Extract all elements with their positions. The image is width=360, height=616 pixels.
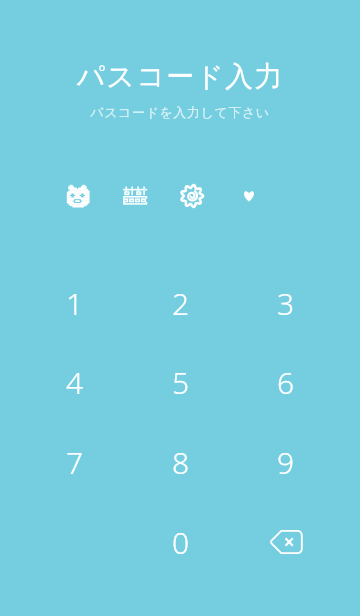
button[interactable]: 0 [128, 511, 233, 573]
staticText: 3 [277, 283, 295, 324]
button[interactable]: 8 [128, 431, 233, 493]
button[interactable]: Panda [60, 178, 96, 214]
staticText: 6 [277, 362, 295, 403]
staticText: 9 [277, 442, 295, 483]
staticText: パスコードを入力して下さい [0, 104, 360, 120]
button[interactable]: Delete [233, 511, 338, 573]
button[interactable]: 3 [233, 272, 338, 334]
staticText: パスコード入力 [0, 59, 360, 94]
button[interactable]: 7 [22, 431, 128, 493]
button[interactable]: Heart [231, 178, 267, 214]
button[interactable]: 5 [128, 351, 233, 413]
button[interactable]: 4 [22, 351, 128, 413]
staticText: 4 [66, 362, 84, 403]
staticText: 0 [172, 522, 190, 563]
button[interactable]: Double happiness [117, 178, 153, 214]
staticText: 8 [172, 442, 190, 483]
button[interactable]: 1 [22, 272, 128, 334]
button[interactable]: Flower [174, 178, 210, 214]
button[interactable]: 6 [233, 351, 338, 413]
staticText: 2 [172, 283, 190, 324]
button[interactable]: 9 [233, 431, 338, 493]
button[interactable]: 2 [128, 272, 233, 334]
staticText: 1 [66, 283, 84, 324]
staticText: 5 [172, 362, 190, 403]
staticText: 7 [66, 442, 84, 483]
